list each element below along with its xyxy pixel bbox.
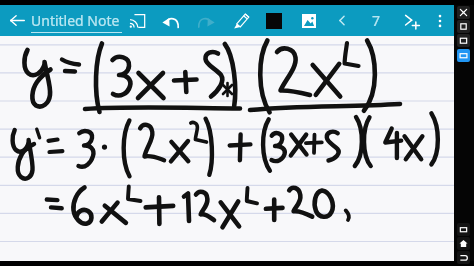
- button[interactable]: Record: [457, 49, 470, 62]
- button[interactable]: Home: [457, 237, 470, 250]
- button[interactable]: Insert image: [295, 5, 323, 36]
- button[interactable]: Back: [457, 251, 470, 264]
- button[interactable]: Screenshot: [457, 34, 470, 47]
- button[interactable]: Add page: [398, 5, 426, 36]
- button[interactable]: Previous page: [328, 5, 356, 36]
- button[interactable]: Untitled Note: [31, 11, 122, 33]
- button[interactable]: Undo: [157, 5, 185, 36]
- staticText: Untitled Note: [31, 11, 120, 30]
- button[interactable]: Pen: [227, 5, 255, 36]
- button[interactable]: Cast: [123, 5, 151, 36]
- button[interactable]: Back: [3, 5, 31, 36]
- button[interactable]: Colour: [260, 5, 288, 36]
- button[interactable]: Expand overlay: [457, 6, 470, 19]
- staticText: 7: [372, 11, 381, 30]
- button[interactable]: More options: [426, 5, 454, 36]
- button[interactable]: 7: [368, 5, 384, 36]
- button[interactable]: Stop recording: [457, 20, 470, 33]
- button[interactable]: Recent apps: [457, 223, 470, 236]
- button[interactable]: Redo: [192, 5, 220, 36]
